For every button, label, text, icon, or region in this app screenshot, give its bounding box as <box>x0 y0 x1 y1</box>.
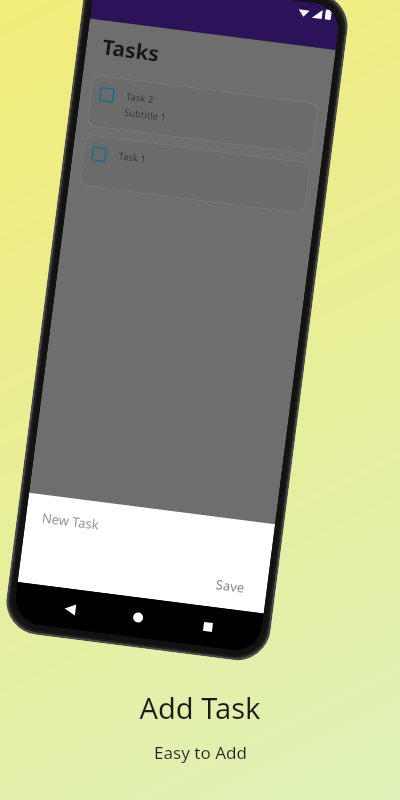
button[interactable]: Home <box>121 601 155 634</box>
staticText: Tasks <box>100 32 162 69</box>
staticText: Task 1 <box>118 149 147 166</box>
button[interactable]: Back <box>53 592 86 626</box>
button[interactable]: Recent apps <box>191 610 224 643</box>
staticText: Add Task <box>139 688 261 727</box>
button[interactable]: Toggle Task 2 <box>99 87 114 102</box>
staticText: Save <box>215 575 246 597</box>
button[interactable]: Toggle Task 2 <box>86 74 319 155</box>
staticText: Easy to Add <box>154 741 247 764</box>
button[interactable]: Save <box>206 570 254 602</box>
staticText: Task 2 <box>125 90 155 106</box>
button[interactable]: Toggle Task 1 <box>78 134 311 214</box>
staticText: Subtitle 1 <box>123 106 167 124</box>
staticText: New Task <box>41 509 101 534</box>
button[interactable]: Toggle Task 1 <box>92 147 106 161</box>
